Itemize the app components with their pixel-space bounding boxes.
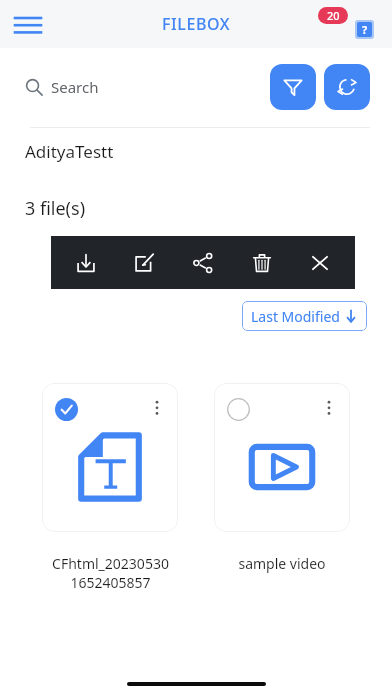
button[interactable]: Delete [238,236,286,289]
button[interactable]: Close [296,236,344,289]
staticText: CFhtml_20230530 1652405857 [52,554,169,592]
staticText: 3 file(s) [25,196,86,221]
button[interactable]: Filter [270,64,316,110]
button[interactable]: Refresh [324,64,370,110]
staticText: FILEBOX [162,13,231,35]
button[interactable]: Selected [55,398,78,421]
button[interactable]: Selected [42,383,178,532]
staticText: ? [362,22,368,37]
button[interactable]: Help [344,4,384,44]
button[interactable]: Last Modified [242,301,367,331]
button[interactable]: Select [214,383,350,532]
button[interactable]: Select [227,398,250,421]
button[interactable]: Edit [120,236,168,289]
staticText: Last Modified [251,307,340,326]
button[interactable]: Search [25,77,270,97]
button[interactable]: More options [316,395,342,421]
button[interactable]: Share [179,236,227,289]
staticText: Search [51,77,99,97]
staticText: 20 [327,8,340,23]
staticText: sample video [238,554,326,573]
staticText: AdityaTestt [25,140,114,163]
button[interactable]: More options [144,395,170,421]
button[interactable]: Download [62,236,110,289]
button[interactable]: Menu [6,2,50,46]
